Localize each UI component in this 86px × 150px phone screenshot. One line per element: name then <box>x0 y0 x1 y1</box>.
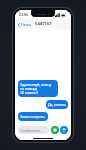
staticText: Здравствуй, плачу на аккорд 20 можно? <box>20 82 56 95</box>
staticText: 5447161 <box>35 21 52 27</box>
staticText: Сообщение... <box>21 128 43 133</box>
staticText: Да, можно <box>48 102 66 107</box>
button[interactable]: Назад <box>15 21 35 28</box>
button[interactable]: Да, можно <box>46 100 68 109</box>
button[interactable]: Здравствуй, плачу на аккорд 20 можно? <box>18 80 58 97</box>
button[interactable]: Заказ получен. <box>18 112 48 121</box>
staticText: Заказ получен. <box>20 114 46 119</box>
staticText: Назад <box>21 22 32 27</box>
button[interactable]: Send <box>60 126 68 134</box>
button[interactable]: Сообщение... <box>18 126 49 134</box>
staticText: 23:06 <box>19 12 28 17</box>
button[interactable]: Attach <box>51 126 59 134</box>
